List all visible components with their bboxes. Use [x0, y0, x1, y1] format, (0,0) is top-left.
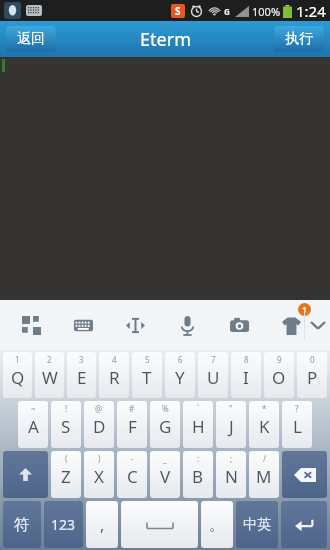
- staticText: 6: [178, 354, 183, 365]
- staticText: N: [225, 465, 238, 488]
- staticText: B: [192, 465, 204, 488]
- staticText: T: [142, 366, 152, 389]
- button[interactable]: /: [249, 451, 279, 498]
- button[interactable]: (: [51, 451, 81, 498]
- staticText: ,: [100, 514, 105, 536]
- button[interactable]: 返回: [6, 26, 56, 52]
- button[interactable]: 6: [165, 352, 195, 398]
- button[interactable]: 3: [67, 352, 96, 398]
- staticText: V: [160, 465, 171, 488]
- button[interactable]: ": [216, 401, 246, 448]
- button[interactable]: [121, 501, 198, 548]
- staticText: 8: [244, 354, 249, 365]
- staticText: ): [98, 453, 101, 464]
- button[interactable]: !: [51, 401, 81, 448]
- button[interactable]: Apps: [18, 312, 44, 338]
- button[interactable]: 。: [201, 501, 233, 548]
- button[interactable]: [282, 451, 327, 498]
- button[interactable]: 中英: [236, 501, 278, 548]
- staticText: L: [293, 415, 302, 438]
- staticText: G: [224, 6, 230, 17]
- staticText: 3: [79, 354, 84, 365]
- button[interactable]: 执行: [274, 26, 324, 52]
- staticText: X: [94, 465, 104, 488]
- staticText: O: [272, 366, 286, 389]
- staticText: S: [61, 415, 71, 438]
- button[interactable]: ,: [86, 501, 118, 548]
- button[interactable]: [281, 501, 327, 548]
- button[interactable]: 123: [44, 501, 83, 548]
- staticText: 4: [112, 354, 117, 365]
- staticText: _: [163, 453, 167, 464]
- button[interactable]: ): [84, 451, 114, 498]
- button[interactable]: 7: [198, 352, 228, 398]
- staticText: D: [93, 415, 106, 438]
- button[interactable]: %: [150, 401, 180, 448]
- staticText: 1: [302, 304, 307, 315]
- button[interactable]: _: [150, 451, 180, 498]
- staticText: 执行: [285, 30, 313, 48]
- button[interactable]: 8: [231, 352, 261, 398]
- button[interactable]: ~: [18, 401, 48, 448]
- staticText: M: [256, 465, 272, 488]
- staticText: F: [128, 415, 137, 438]
- button[interactable]: Move cursor: [122, 312, 148, 338]
- staticText: 123: [51, 515, 76, 534]
- staticText: *: [262, 403, 267, 414]
- staticText: S: [175, 4, 181, 18]
- staticText: C: [127, 465, 138, 488]
- button[interactable]: 4: [99, 352, 129, 398]
- staticText: 符: [14, 515, 30, 535]
- button[interactable]: Hide keyboard: [305, 300, 330, 350]
- staticText: #: [129, 403, 135, 414]
- staticText: 5: [145, 354, 150, 365]
- staticText: ;: [230, 453, 233, 464]
- staticText: 2: [47, 354, 52, 365]
- staticText: /: [263, 453, 266, 464]
- staticText: (: [65, 453, 68, 464]
- button[interactable]: -: [117, 451, 147, 498]
- button[interactable]: ?: [282, 401, 312, 448]
- staticText: 1: [15, 354, 20, 365]
- button[interactable]: 0: [297, 352, 327, 398]
- staticText: H: [192, 415, 205, 438]
- staticText: I: [243, 366, 249, 389]
- button[interactable]: @: [84, 401, 114, 448]
- staticText: 返回: [17, 30, 45, 48]
- button[interactable]: Camera: [226, 312, 252, 338]
- staticText: 1:24: [296, 1, 326, 21]
- staticText: ~: [31, 403, 36, 414]
- staticText: 7: [211, 354, 216, 365]
- staticText: Eterm: [140, 27, 191, 52]
- button[interactable]: 2: [35, 352, 64, 398]
- button[interactable]: [3, 451, 48, 498]
- button[interactable]: *: [249, 401, 279, 448]
- button[interactable]: 9: [264, 352, 294, 398]
- staticText: ": [229, 403, 233, 414]
- staticText: W: [42, 366, 58, 389]
- staticText: R: [109, 366, 120, 389]
- staticText: 100%: [252, 4, 281, 19]
- button[interactable]: #: [117, 401, 147, 448]
- staticText: `: [197, 403, 200, 414]
- staticText: P: [307, 366, 318, 389]
- staticText: Y: [175, 366, 185, 389]
- staticText: 0: [310, 354, 315, 365]
- staticText: K: [259, 415, 270, 438]
- staticText: A: [28, 415, 39, 438]
- staticText: 9: [277, 354, 282, 365]
- button[interactable]: Themes: [278, 312, 304, 338]
- staticText: !: [65, 403, 68, 414]
- button[interactable]: ;: [216, 451, 246, 498]
- button[interactable]: Voice input: [174, 312, 200, 338]
- button[interactable]: Keyboard: [70, 312, 96, 338]
- staticText: G: [159, 415, 172, 438]
- button[interactable]: 1: [3, 352, 32, 398]
- button[interactable]: :: [183, 451, 213, 498]
- staticText: J: [229, 415, 234, 438]
- button[interactable]: 符: [3, 501, 41, 548]
- staticText: -: [131, 453, 134, 464]
- button[interactable]: `: [183, 401, 213, 448]
- staticText: E: [77, 366, 87, 389]
- button[interactable]: 5: [132, 352, 162, 398]
